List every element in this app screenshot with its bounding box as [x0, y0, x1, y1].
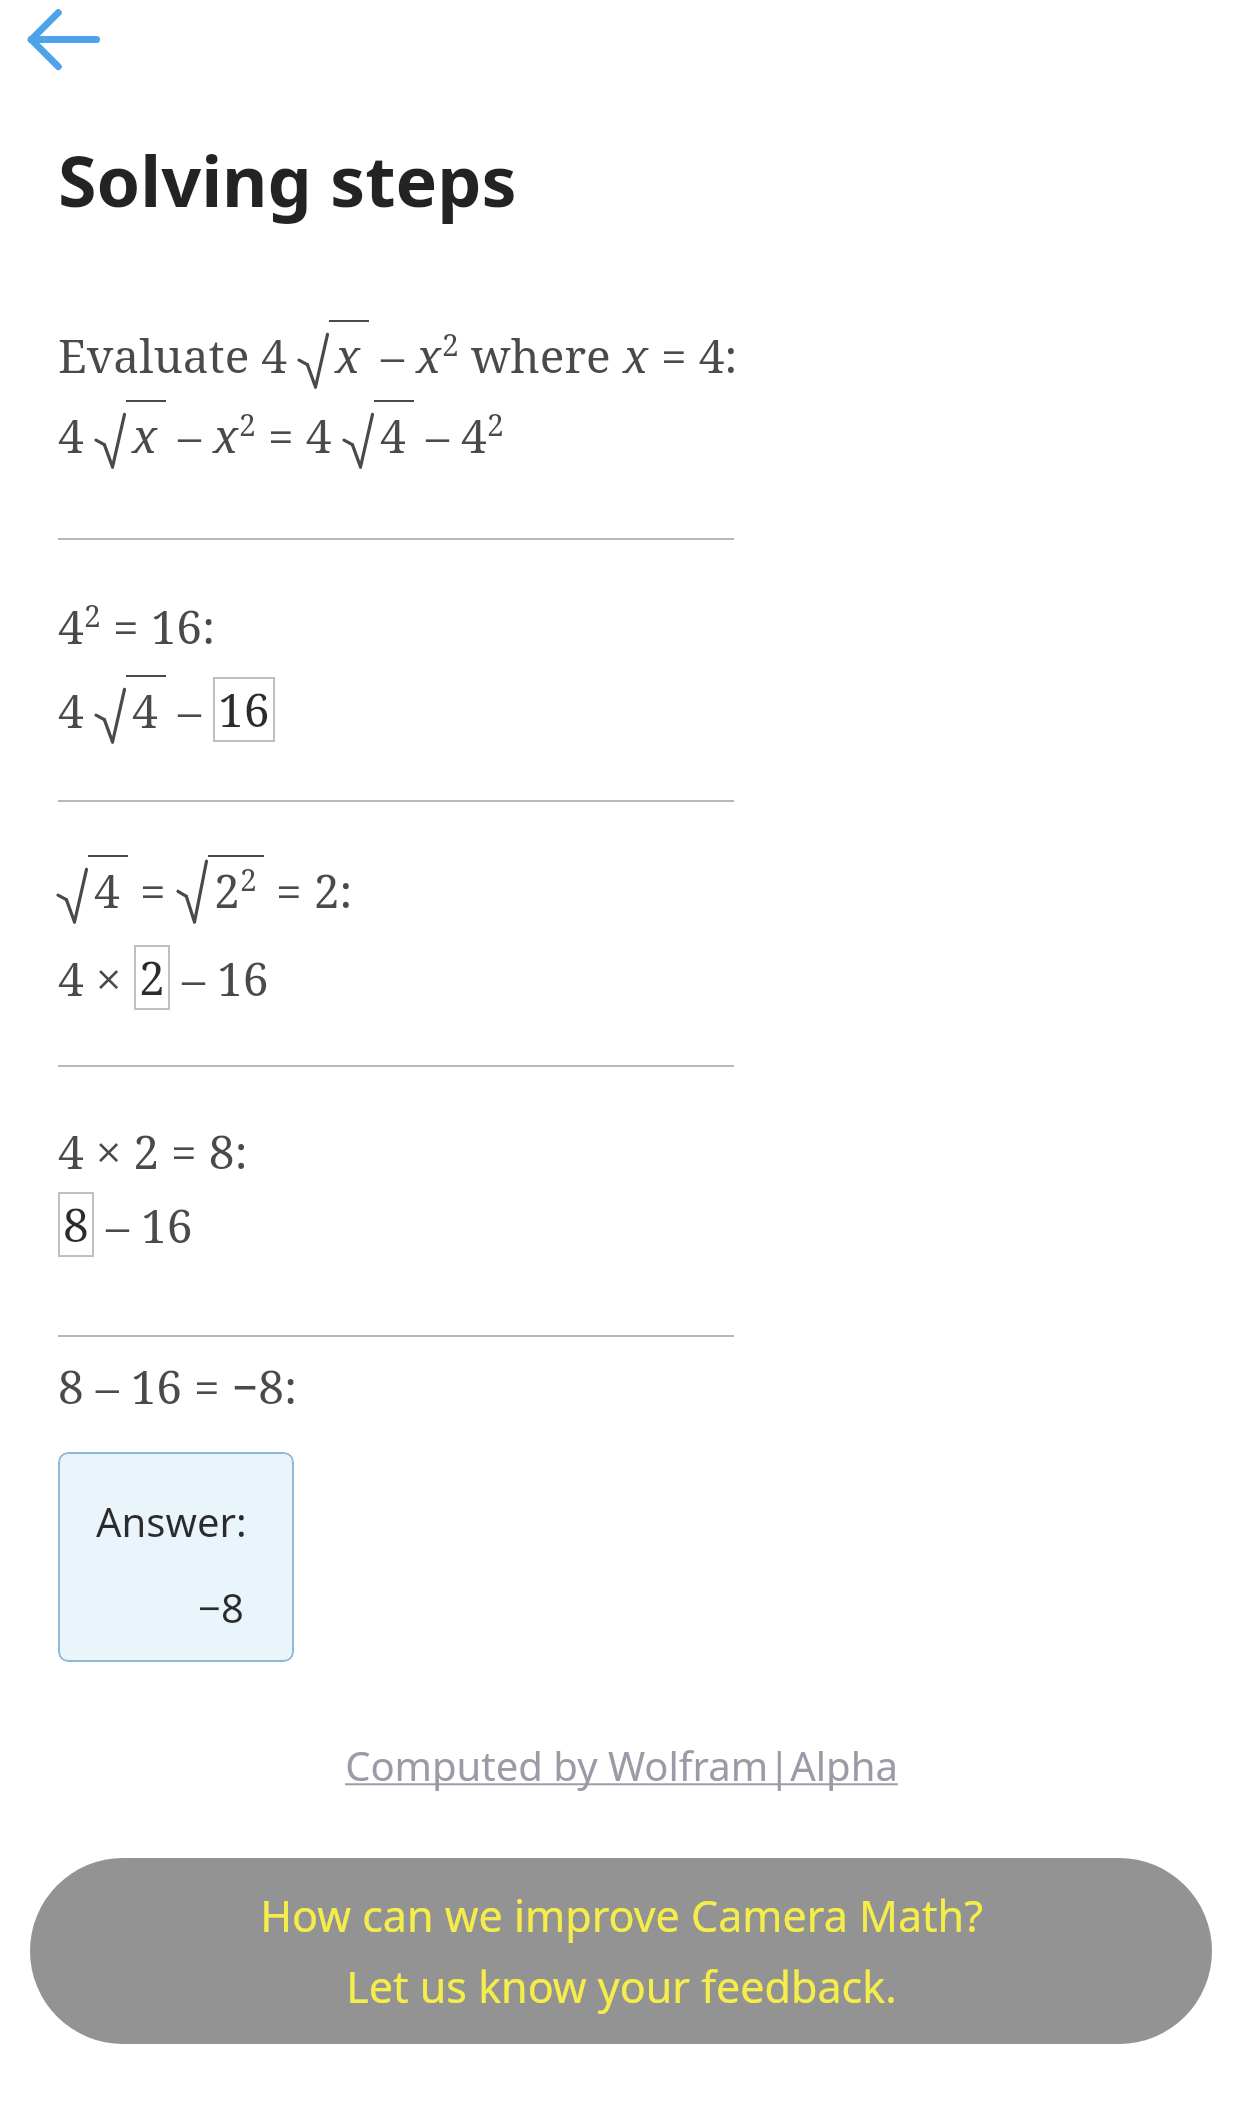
staticText: 2 [240, 859, 257, 900]
staticText: 4 [132, 679, 158, 742]
staticText: x [213, 404, 239, 467]
staticText: −8 [198, 1580, 244, 1634]
staticText: 4 [58, 595, 84, 658]
staticText: Solving steps [58, 132, 517, 227]
staticText: 2 [442, 324, 459, 365]
staticText: – [166, 679, 213, 742]
staticText: 4 [380, 404, 406, 467]
staticText: 2 [239, 404, 256, 445]
staticText: 4 [461, 404, 487, 467]
staticText: 2 [487, 404, 504, 445]
staticText: 2 [84, 595, 101, 636]
staticText: x [335, 324, 361, 387]
button[interactable]: Answer: [58, 1452, 294, 1662]
staticText: = 2: [264, 859, 353, 922]
staticText: 8 – 16 = −8: [58, 1355, 298, 1418]
staticText: where [459, 324, 623, 387]
staticText: – [414, 404, 461, 467]
button[interactable]: Back [14, 0, 110, 78]
staticText: Evaluate 4 [58, 324, 299, 387]
staticText: Answer: [96, 1494, 247, 1548]
staticText: Computed by Wolfram|Alpha [345, 1738, 898, 1792]
staticText: – 16 [94, 1194, 193, 1257]
staticText: = 4: [649, 324, 738, 387]
staticText: – 16 [170, 947, 269, 1010]
staticText: 4 × [58, 947, 134, 1010]
staticText: 8 [63, 1193, 89, 1256]
staticText: 4 [58, 679, 96, 742]
staticText: = [128, 859, 178, 922]
staticText: 16 [218, 678, 270, 741]
staticText: = 16: [101, 595, 216, 658]
staticText: x [623, 324, 649, 387]
staticText: – [166, 404, 213, 467]
button[interactable]: Computed by Wolfram|Alpha [0, 1738, 1242, 1792]
staticText: – [369, 324, 416, 387]
staticText: x [132, 404, 158, 467]
staticText: = 4 [256, 404, 344, 467]
staticText: x [416, 324, 442, 387]
staticText: 2 [214, 859, 240, 922]
staticText: Let us know your feedback. [346, 1957, 897, 2016]
button[interactable]: How can we improve Camera Math? [30, 1858, 1212, 2044]
staticText: 4 × 2 = 8: [58, 1120, 248, 1183]
staticText: 4 [94, 859, 120, 922]
staticText: 2 [139, 946, 165, 1009]
staticText: How can we improve Camera Math? [260, 1886, 983, 1945]
staticText: 4 [58, 404, 96, 467]
